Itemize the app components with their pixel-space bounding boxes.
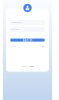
staticText: Help (42, 45, 45, 47)
staticText: Forgot? (10, 45, 16, 47)
staticText: Sign Up (29, 65, 34, 67)
button[interactable]: Forgot? (10, 45, 16, 47)
button[interactable]: Sign In (10, 39, 45, 42)
staticText: New here? (21, 65, 29, 67)
button[interactable]: New here? (21, 65, 34, 67)
button[interactable]: Help (42, 45, 45, 47)
staticText: Email address (12, 22, 22, 23)
staticText: Sign In (22, 38, 32, 42)
staticText: Password (12, 29, 20, 30)
